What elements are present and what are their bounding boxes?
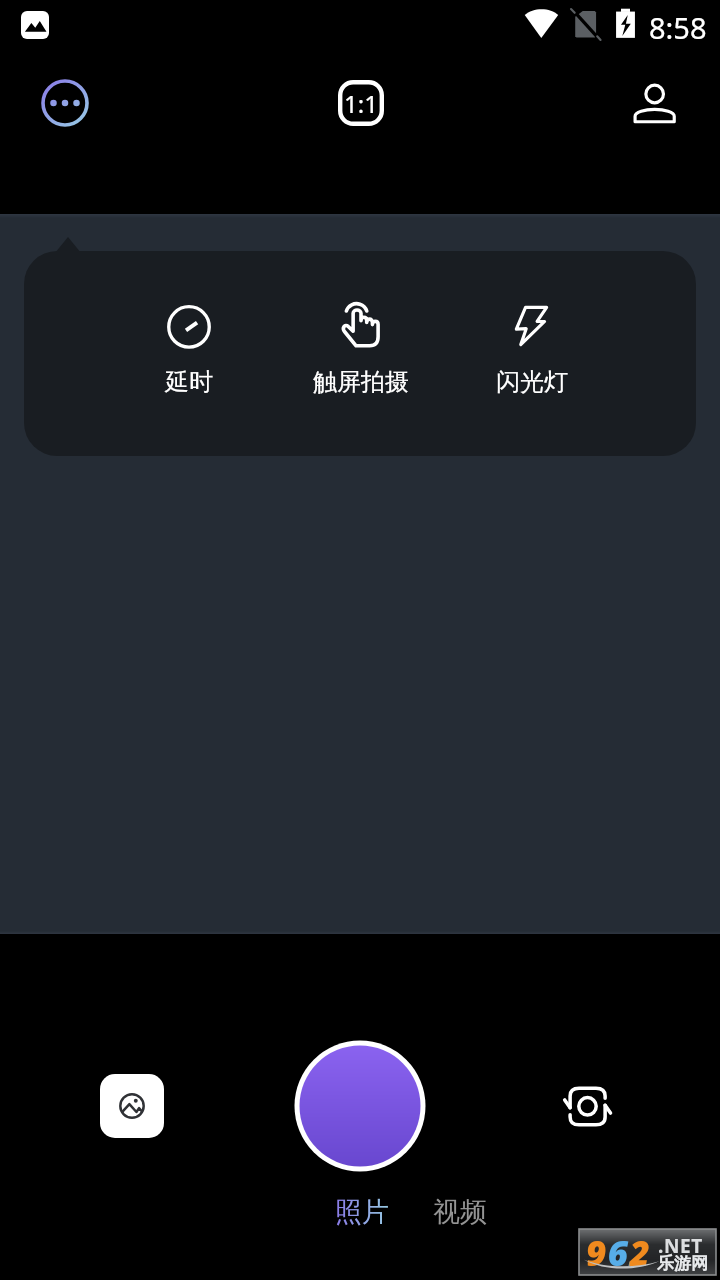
staticText: 962 [586,1229,652,1275]
button[interactable]: 触屏拍摄 [275,251,446,397]
staticText: 8:58 [649,8,707,47]
button[interactable]: 延时 [103,251,275,397]
staticText: 闪光灯 [496,367,568,397]
button[interactable]: 视频 [423,1192,497,1232]
button[interactable]: 闪光灯 [446,251,617,397]
staticText: .NET [658,1233,703,1259]
button[interactable]: Profile [632,83,676,127]
button[interactable]: 照片 [325,1192,399,1232]
staticText: 视频 [433,1195,487,1229]
button[interactable]: Gallery [100,1074,164,1138]
button[interactable]: Switch camera [564,1086,611,1127]
staticText: 乐游网 [657,1253,708,1274]
button[interactable]: More options [41,79,89,127]
button[interactable]: 1:1 [338,80,384,126]
staticText: 延时 [165,367,213,397]
staticText: 触屏拍摄 [313,367,409,397]
staticText: 照片 [335,1195,389,1229]
button[interactable]: Shutter [294,1040,426,1172]
staticText: 1:1 [344,87,378,120]
